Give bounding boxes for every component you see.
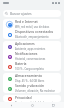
staticText: Batería	[15, 61, 27, 66]
button[interactable]: Recientes	[43, 102, 64, 108]
button[interactable]: Almacenamiento	[3, 73, 61, 83]
button[interactable]: Aplicaciones	[3, 41, 61, 51]
staticText: Almacenamiento	[15, 73, 42, 78]
staticText: 100 % - Carga completa	[15, 67, 44, 71]
button[interactable]: Red e Internet	[3, 19, 61, 29]
staticText: Dispositivos conectados	[15, 29, 54, 34]
staticText: Sonido y vibración	[15, 83, 45, 88]
button[interactable]: Inicio	[22, 102, 43, 108]
button[interactable]: Batería	[3, 61, 61, 71]
staticText: Aplicaciones	[15, 41, 35, 46]
staticText: Historial, conversaciones	[15, 57, 46, 61]
button[interactable]: Dispositivos conectados	[3, 29, 61, 39]
staticText: Wifi, red móvil, uso de datos	[15, 25, 50, 29]
button[interactable]: Sonido y vibración	[3, 83, 61, 93]
staticText: Asistente, apps recientes	[15, 47, 46, 51]
button[interactable]: Atrás	[0, 102, 22, 108]
staticText: Notificaciones	[15, 51, 38, 56]
other: Buscar	[5, 12, 8, 15]
staticText: Buscar ajustes	[10, 12, 32, 16]
button[interactable]: Notificaciones	[3, 51, 61, 61]
staticText: Disp. 45 % - 64 GB libres	[15, 79, 45, 83]
button[interactable]: Buscar	[3, 10, 61, 17]
button[interactable]: Privacidad	[3, 95, 61, 102]
staticText: Permisos, actividad de la cuenta	[15, 101, 55, 102]
staticText: Privacidad	[15, 95, 32, 100]
staticText: Red e Internet	[15, 19, 38, 24]
staticText: Volumen, vibración, No molestar	[15, 89, 55, 93]
staticText: Bluetooth, emparejamiento	[15, 35, 49, 39]
